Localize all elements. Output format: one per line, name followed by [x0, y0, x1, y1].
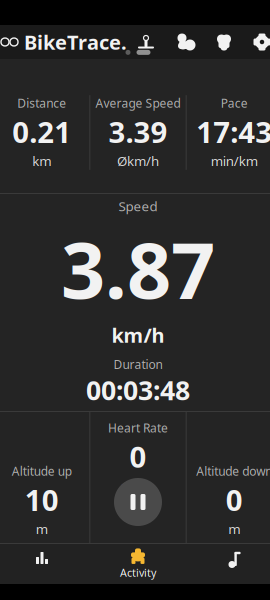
button[interactable]: Clothing — [135, 32, 157, 52]
staticText: Duration — [113, 356, 162, 372]
staticText: 17:43 — [196, 112, 270, 151]
staticText: Altitude down — [196, 463, 270, 479]
staticText: 0.21 — [12, 112, 71, 151]
staticText: km — [32, 152, 51, 170]
staticText: min/km — [211, 152, 258, 170]
button[interactable]: Heart rate sensor — [213, 32, 235, 52]
button[interactable]: BikeTrace. — [0, 23, 127, 61]
staticText: Altitude up — [12, 463, 72, 479]
staticText: Pace — [221, 95, 248, 111]
button[interactable]: Pause — [114, 478, 162, 526]
staticText: Average Speed — [95, 95, 180, 111]
staticText: s/min — [121, 477, 155, 495]
staticText: BikeTrace. — [24, 29, 127, 55]
staticText: Heart Rate — [108, 420, 168, 436]
staticText: Økm/h — [117, 152, 159, 170]
staticText: 3.39 — [108, 112, 167, 151]
staticText: Activity — [120, 565, 156, 580]
staticText: 0 — [226, 480, 243, 519]
staticText: m — [36, 520, 48, 538]
staticText: 0 — [129, 437, 146, 476]
staticText: km/h — [111, 322, 164, 348]
button[interactable]: Settings — [251, 31, 270, 53]
staticText: 10 — [25, 480, 59, 519]
staticText: Distance — [17, 95, 66, 111]
staticText: 00:03:48 — [86, 372, 190, 408]
staticText: Speed — [118, 197, 157, 215]
button[interactable]: Music — [186, 544, 270, 584]
button[interactable]: Weather — [173, 31, 197, 53]
button[interactable]: Statistics — [0, 544, 90, 584]
staticText: 3.87 — [61, 217, 215, 320]
button[interactable]: Activity — [90, 544, 186, 584]
staticText: m — [228, 520, 240, 538]
